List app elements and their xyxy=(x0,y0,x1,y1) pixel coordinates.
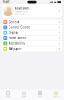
staticText: Control Centre xyxy=(9,26,31,29)
staticText: Apps xyxy=(38,96,42,98)
staticText: Accessibility xyxy=(9,42,25,45)
button[interactable]: Today xyxy=(0,90,16,100)
staticText: Apple ID, iCloud, Media xyxy=(15,11,28,13)
staticText: Display xyxy=(9,31,18,34)
button[interactable]: Games xyxy=(16,90,32,100)
staticText: & Purchases xyxy=(15,13,25,15)
button[interactable]: Home Screen xyxy=(2,36,62,41)
button[interactable]: Display xyxy=(2,30,62,36)
staticText: Wallpaper xyxy=(9,47,22,51)
staticText: Games xyxy=(21,96,26,98)
staticText: Today xyxy=(5,96,10,98)
button[interactable]: Search xyxy=(48,90,64,100)
button[interactable]: Wallpaper xyxy=(2,46,62,51)
button[interactable]: General xyxy=(2,20,62,25)
staticText: Search xyxy=(53,96,59,98)
staticText: Home Screen xyxy=(9,36,27,40)
button[interactable]: Control Centre xyxy=(2,25,62,30)
button[interactable]: Apps xyxy=(32,90,48,100)
staticText: 9:41 xyxy=(3,0,10,4)
button[interactable]: Adam Smith xyxy=(2,4,62,18)
staticText: General xyxy=(9,20,20,24)
button[interactable]: Accessibility xyxy=(2,41,62,46)
staticText: Adam Smith xyxy=(15,7,30,10)
